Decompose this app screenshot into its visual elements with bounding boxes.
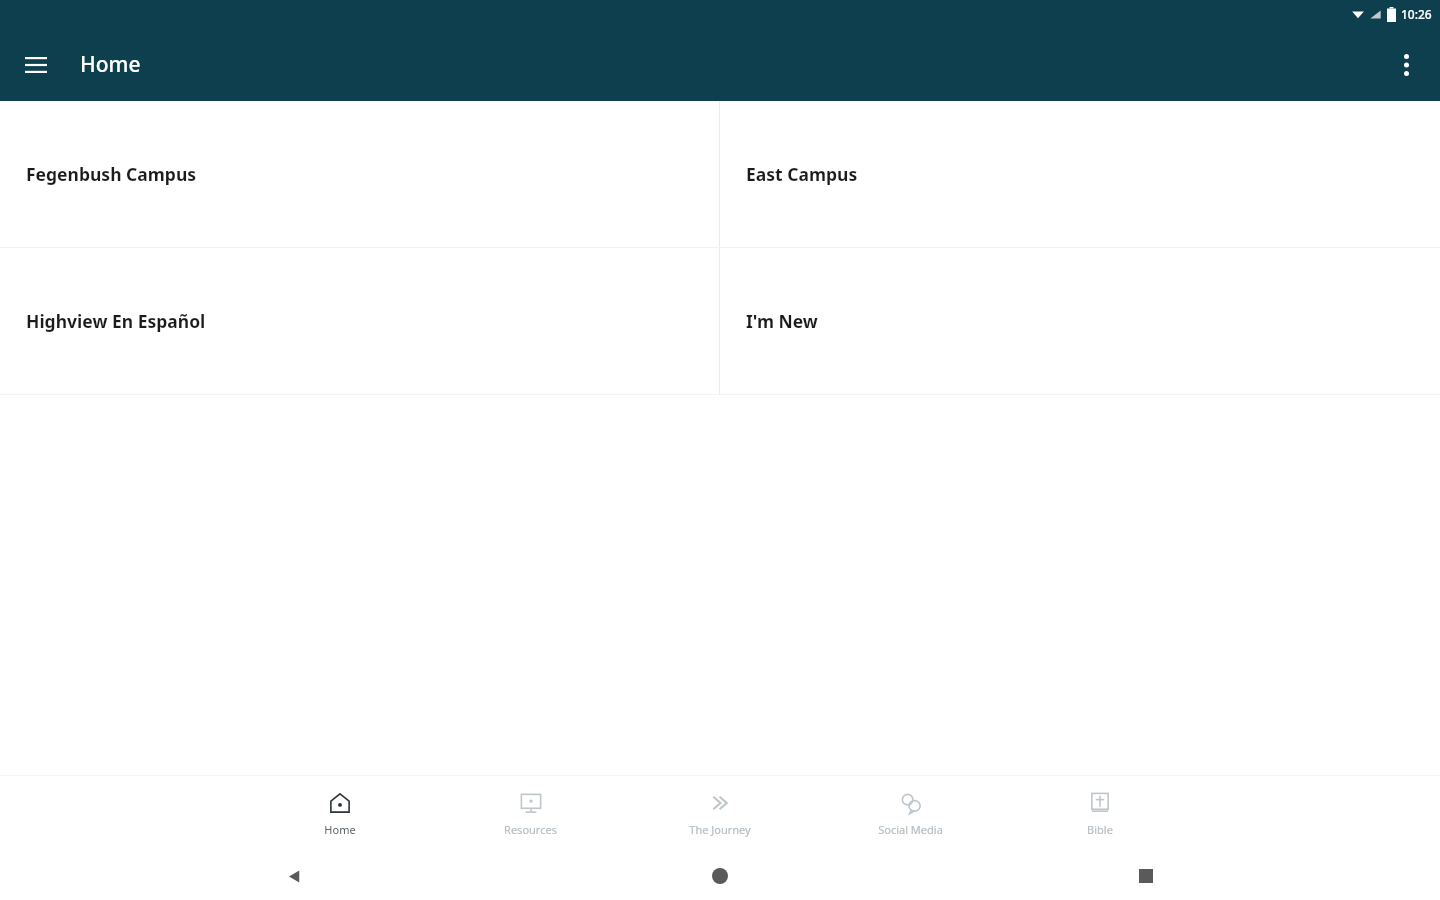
- button[interactable]: Resources: [435, 776, 625, 852]
- staticText: East Campus: [746, 162, 858, 186]
- staticText: The Journey: [689, 822, 751, 837]
- staticText: Highview En Español: [26, 309, 206, 333]
- button[interactable]: Highview En Español: [0, 248, 719, 394]
- button[interactable]: More options: [1382, 41, 1430, 89]
- button[interactable]: Bible: [1005, 776, 1195, 852]
- button[interactable]: Fegenbush Campus: [0, 101, 719, 247]
- button[interactable]: Open navigation drawer: [12, 41, 60, 89]
- staticText: 10:26: [1401, 6, 1432, 22]
- staticText: Social Media: [878, 822, 943, 837]
- staticText: Home: [324, 822, 356, 837]
- button[interactable]: The Journey: [625, 776, 815, 852]
- staticText: Bible: [1087, 822, 1113, 837]
- staticText: Fegenbush Campus: [26, 162, 197, 186]
- staticText: Resources: [504, 822, 557, 837]
- button[interactable]: East Campus: [720, 101, 1440, 247]
- button[interactable]: Recent apps: [1122, 852, 1170, 900]
- button[interactable]: I'm New: [720, 248, 1440, 394]
- button[interactable]: Back: [270, 852, 318, 900]
- staticText: I'm New: [746, 309, 818, 333]
- button[interactable]: Home: [245, 776, 435, 852]
- button[interactable]: Home: [696, 852, 744, 900]
- button[interactable]: Social Media: [815, 776, 1005, 852]
- staticText: Home: [80, 50, 141, 79]
